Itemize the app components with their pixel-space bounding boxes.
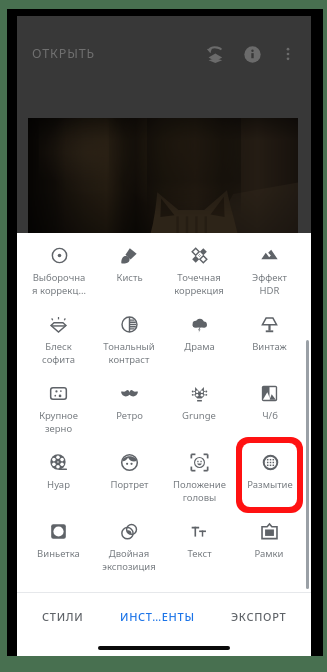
- staticText: Эффект HDR: [252, 271, 287, 297]
- button[interactable]: Размытие: [234, 440, 304, 509]
- staticText: Тональный контраст: [103, 340, 155, 366]
- staticText: Драма: [184, 340, 215, 353]
- button[interactable]: More options: [274, 40, 302, 68]
- staticText: Grunge: [182, 409, 216, 422]
- button[interactable]: Нуар: [23, 440, 94, 509]
- staticText: Точечная коррекция: [174, 271, 224, 297]
- button[interactable]: Двойная экспозиция: [94, 509, 164, 578]
- button[interactable]: Тональный контраст: [94, 302, 164, 371]
- button[interactable]: ИНСТ…ЕНТЫ: [114, 597, 201, 636]
- staticText: Текст: [187, 547, 212, 560]
- staticText: ЭКСПОРТ: [231, 609, 287, 624]
- button[interactable]: Ретро: [94, 371, 164, 440]
- button[interactable]: ЭКСПОРТ: [225, 597, 293, 636]
- button[interactable]: Ч/б: [234, 371, 304, 440]
- staticText: Выборочна я коррекц…: [32, 271, 86, 297]
- button[interactable]: Info: [237, 39, 267, 69]
- staticText: Ч/б: [262, 409, 278, 422]
- button[interactable]: СТИЛИ: [36, 597, 90, 636]
- button[interactable]: Grunge: [164, 371, 234, 440]
- button[interactable]: Блеск софита: [23, 302, 94, 371]
- button[interactable]: View edit stack: [199, 39, 229, 69]
- staticText: Блеск софита: [42, 340, 75, 366]
- button[interactable]: Выборочна я коррекц…: [23, 233, 94, 302]
- button[interactable]: Точечная коррекция: [164, 233, 234, 302]
- staticText: Кисть: [116, 271, 143, 284]
- button[interactable]: Драма: [164, 302, 234, 371]
- button[interactable]: Винтаж: [234, 302, 304, 371]
- staticText: Рамки: [254, 547, 284, 560]
- button[interactable]: Виньетка: [23, 509, 94, 578]
- staticText: Размытие: [246, 478, 292, 491]
- staticText: ИНСТ…ЕНТЫ: [120, 609, 195, 624]
- staticText: Крупное зерно: [39, 409, 78, 435]
- staticText: Портрет: [110, 478, 149, 491]
- staticText: Положение головы: [173, 478, 226, 504]
- staticText: Винтаж: [252, 340, 287, 353]
- staticText: Виньетка: [37, 547, 80, 560]
- button[interactable]: ОТКРЫТЬ: [29, 37, 99, 70]
- button[interactable]: Портрет: [94, 440, 164, 509]
- staticText: СТИЛИ: [42, 609, 84, 624]
- staticText: Ретро: [116, 409, 143, 422]
- button[interactable]: Рамки: [234, 509, 304, 578]
- button[interactable]: Кисть: [94, 233, 164, 302]
- staticText: Нуар: [47, 478, 70, 491]
- staticText: ОТКРЫТЬ: [32, 45, 96, 62]
- button[interactable]: Крупное зерно: [23, 371, 94, 440]
- button[interactable]: Размытие: [242, 443, 297, 507]
- button[interactable]: Эффект HDR: [234, 233, 304, 302]
- button[interactable]: Текст: [164, 509, 234, 578]
- staticText: Размытие: [247, 478, 293, 491]
- staticText: Двойная экспозиция: [102, 547, 156, 573]
- button[interactable]: Положение головы: [164, 440, 234, 509]
